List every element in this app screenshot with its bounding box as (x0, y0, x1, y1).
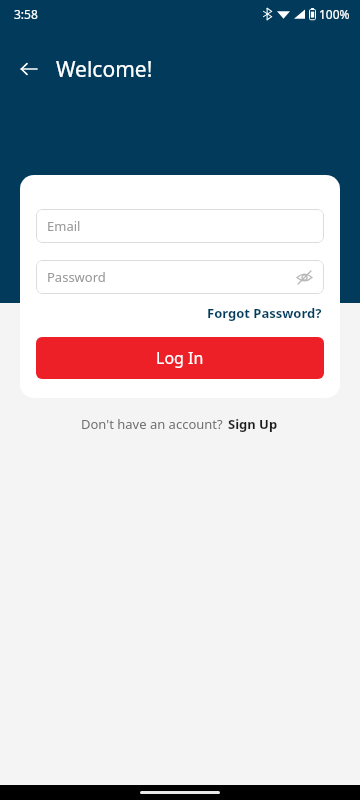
staticText: Email (47, 217, 81, 235)
button[interactable]: Sign Up (227, 413, 279, 435)
staticText: Forgot Password? (207, 304, 322, 322)
staticText: Log In (156, 347, 204, 369)
button[interactable]: Back (12, 52, 46, 86)
staticText: Welcome! (56, 55, 153, 84)
staticText: 3:58 (14, 6, 38, 22)
staticText: Don't have an account? (81, 415, 227, 433)
button[interactable]: Email (36, 209, 324, 243)
button[interactable]: Log In (36, 337, 324, 379)
button[interactable]: Show password (291, 264, 317, 290)
button[interactable]: Password (36, 260, 324, 294)
staticText: 100% (319, 6, 350, 22)
staticText: Password (47, 268, 106, 286)
staticText: Sign Up (228, 415, 278, 433)
button[interactable]: Forgot Password? (205, 302, 324, 324)
